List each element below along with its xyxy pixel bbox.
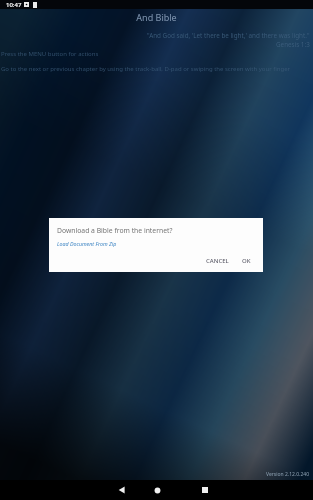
staticText: Version 2.12.0.240	[0, 471, 309, 478]
button[interactable]: OK	[240, 255, 253, 267]
staticText: OK	[242, 257, 251, 265]
button[interactable]: Back	[107, 480, 135, 500]
button[interactable]: Load Document From Zip	[57, 240, 117, 247]
staticText: Press the MENU button for actions	[1, 50, 99, 58]
staticText: CANCEL	[206, 257, 229, 265]
button[interactable]: Home	[143, 480, 171, 500]
staticText: And Bible	[0, 11, 313, 23]
button[interactable]: CANCEL	[204, 255, 231, 267]
staticText: 10:47	[6, 1, 22, 9]
staticText: Download a Bible from the internet?	[57, 226, 173, 235]
staticText: Genesis 1:3	[276, 40, 310, 49]
button[interactable]: Recent apps	[191, 480, 219, 500]
staticText: Go to the next or previous chapter by us…	[1, 65, 291, 73]
staticText: "And God said, 'Let there be light,' and…	[147, 31, 310, 40]
